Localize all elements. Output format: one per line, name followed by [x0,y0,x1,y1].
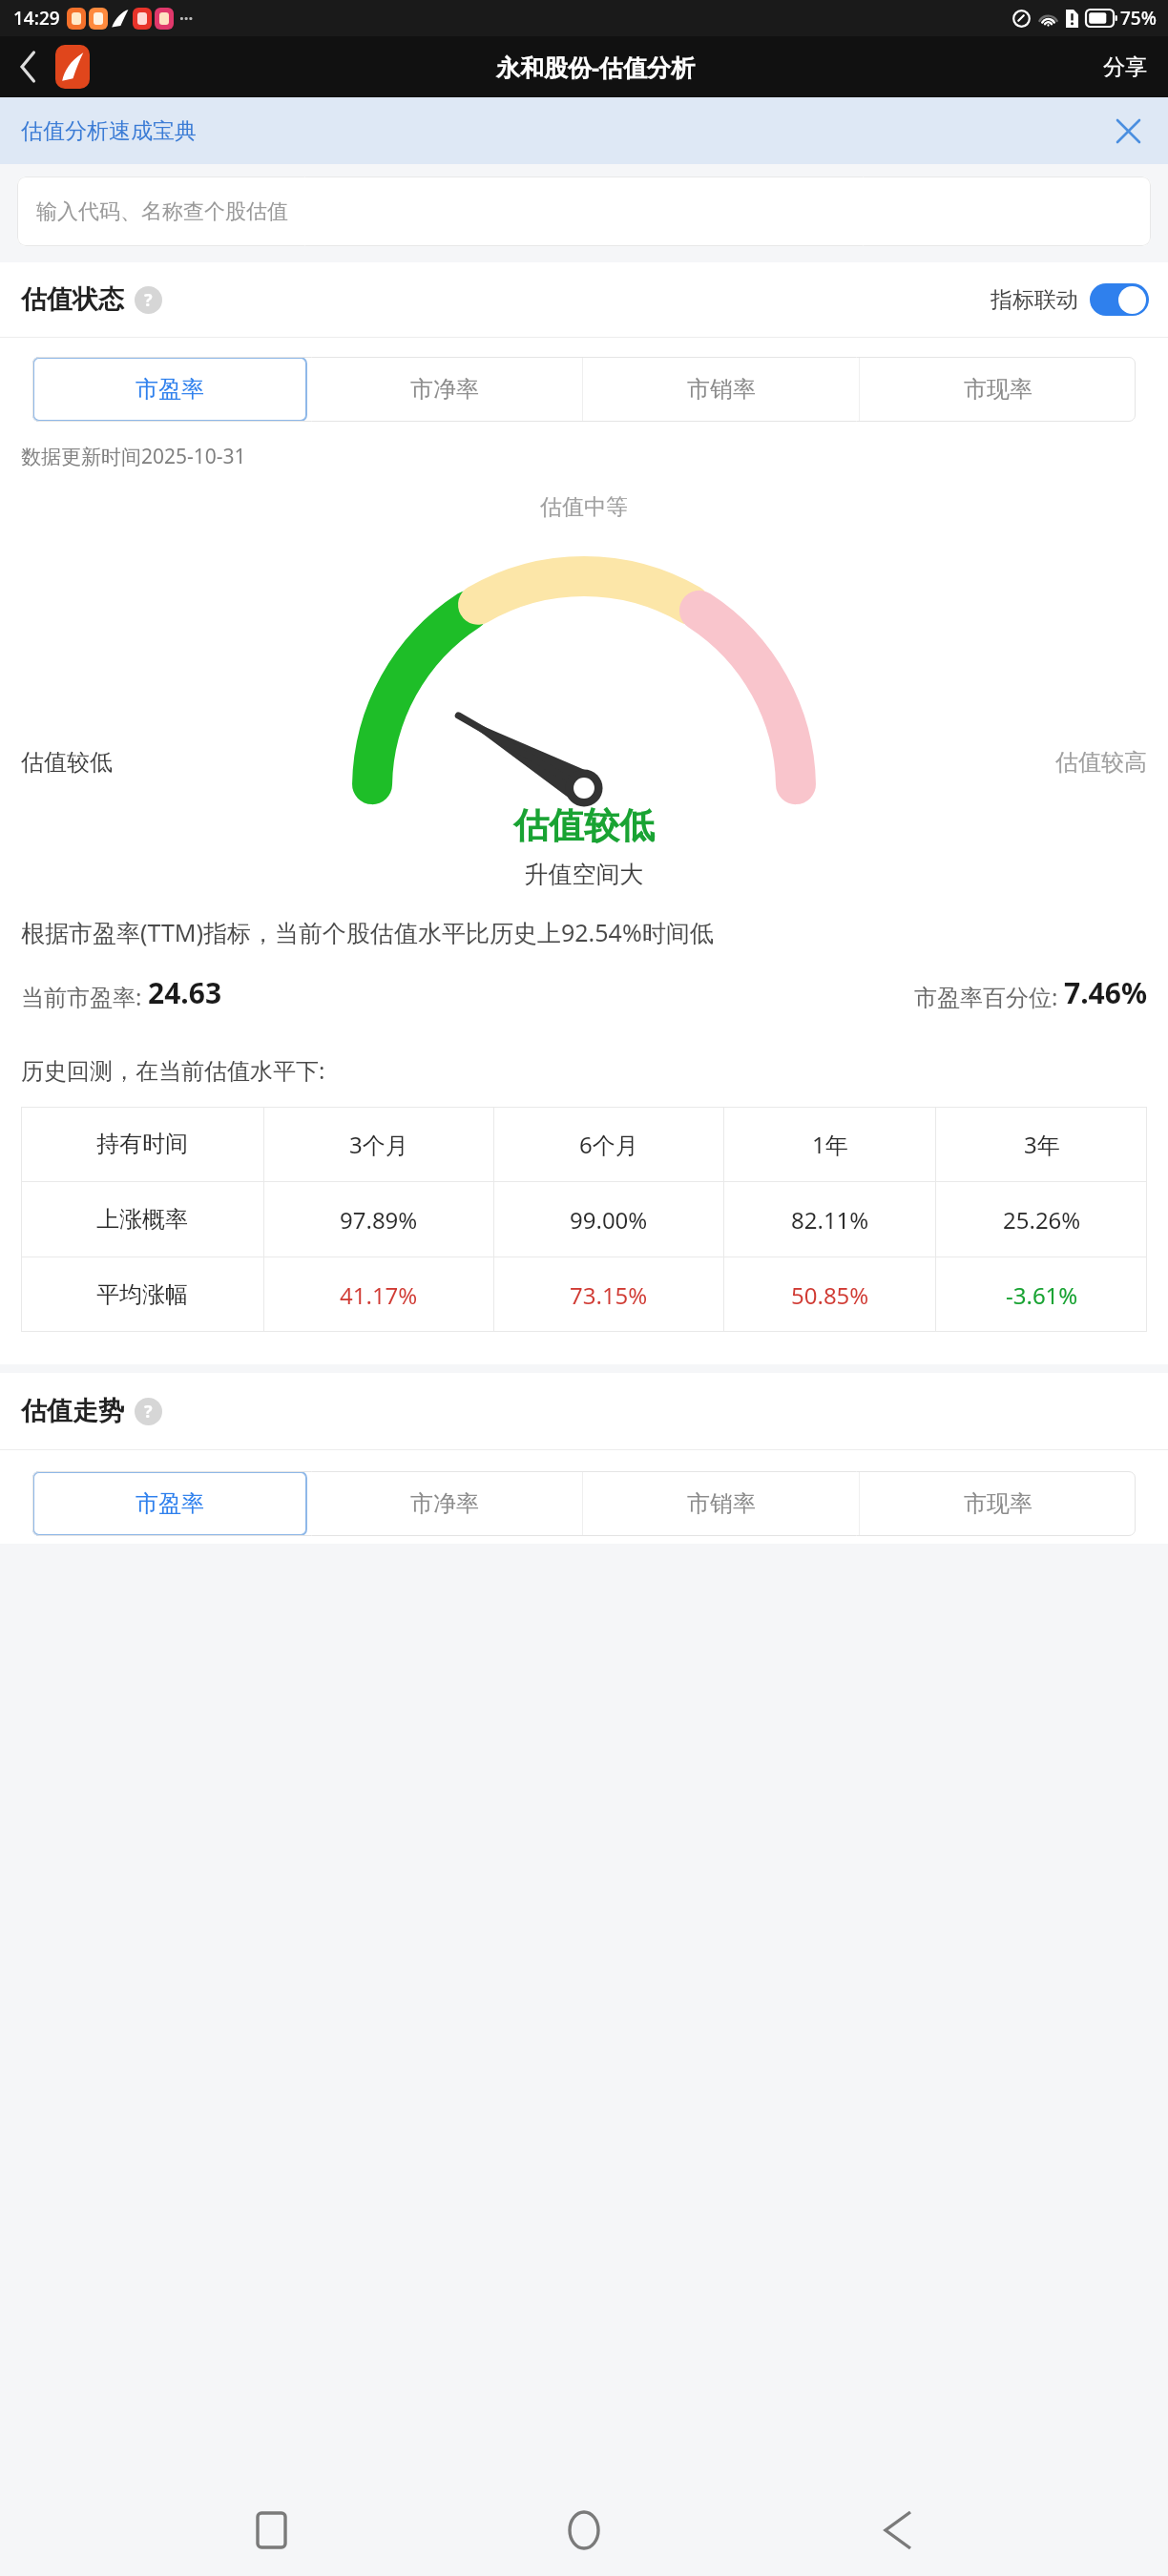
staticText: -3.61% [1006,1279,1078,1311]
staticText: ··· [179,8,194,30]
staticText: 平均涨幅 [96,1280,188,1309]
staticText: 持有时间 [96,1130,188,1158]
staticText: 3年 [1024,1129,1060,1160]
staticText: 当前市盈率: [21,981,148,1012]
button[interactable]: 市现率 [860,1471,1136,1536]
staticText: 分享 [1103,53,1147,81]
button[interactable]: App logo [55,45,90,89]
button[interactable]: 市销率 [583,1471,859,1536]
button[interactable]: 市现率 [860,357,1136,422]
staticText: 上涨概率 [96,1205,188,1234]
staticText: 估值状态 [21,283,124,316]
button[interactable]: 分享 [1103,36,1147,97]
staticText: 24.63 [148,973,222,1012]
staticText: 历史回测，在当前估值水平下: [21,1054,325,1086]
staticText: 41.17% [340,1279,418,1311]
button[interactable]: 估值分析速成宝典 [21,117,1107,145]
staticText: 99.00% [570,1204,648,1236]
button[interactable]: 市净率 [307,357,582,422]
staticText: 3个月 [349,1129,408,1160]
staticText: 估值较低 [0,803,1168,848]
staticText: 25.26% [1003,1204,1081,1236]
button[interactable]: 市盈率 [32,357,307,422]
staticText: ? [144,288,153,312]
button[interactable]: Recents [228,2487,314,2573]
button[interactable]: 市销率 [583,357,859,422]
button[interactable]: Back [855,2487,941,2573]
button[interactable]: Home [541,2487,627,2573]
staticText: ? [144,1400,153,1423]
staticText: 市盈率 [136,1489,204,1518]
staticText: 14:29 [13,6,60,31]
staticText: 市销率 [687,1489,756,1518]
button[interactable]: Help [135,1398,162,1425]
button[interactable]: Close banner [1107,110,1149,152]
staticText: 市盈率百分位: [914,981,1064,1012]
button[interactable]: 市盈率 [32,1471,307,1536]
staticText: 估值较高 [1055,748,1147,777]
staticText: 7.46% [1064,973,1147,1012]
staticText: 市现率 [964,1489,1032,1518]
button[interactable]: 市净率 [307,1471,582,1536]
staticText: 市现率 [964,375,1032,404]
staticText: 估值走势 [21,1395,124,1427]
button[interactable]: 指标联动 [991,283,1149,316]
staticText: 6个月 [579,1129,638,1160]
staticText: 市净率 [410,375,479,404]
staticText: 指标联动 [991,286,1078,314]
staticText: 输入代码、名称查个股估值 [36,198,288,225]
staticText: 市盈率 [136,375,204,404]
button[interactable]: Back [0,36,55,97]
staticText: 50.85% [791,1279,869,1311]
staticText: 根据市盈率(TTM)指标，当前个股估值水平比历史上92.54%时间低 [21,916,714,948]
button[interactable]: 输入代码、名称查个股估值 [17,177,1151,246]
staticText: 97.89% [340,1204,418,1236]
staticText: 市净率 [410,1489,479,1518]
staticText: 82.11% [791,1204,869,1236]
staticText: 永和股份-估值分析 [496,51,696,83]
staticText: 73.15% [570,1279,648,1311]
staticText: 1年 [812,1129,848,1160]
staticText: 估值中等 [0,493,1168,521]
staticText: 75% [1120,6,1157,31]
staticText: 市销率 [687,375,756,404]
staticText: 估值分析速成宝典 [21,117,197,145]
staticText: 数据更新时间2025-10-31 [21,443,246,470]
staticText: 估值较低 [21,748,113,777]
staticText: 升值空间大 [0,860,1168,889]
button[interactable]: Help [135,286,162,314]
